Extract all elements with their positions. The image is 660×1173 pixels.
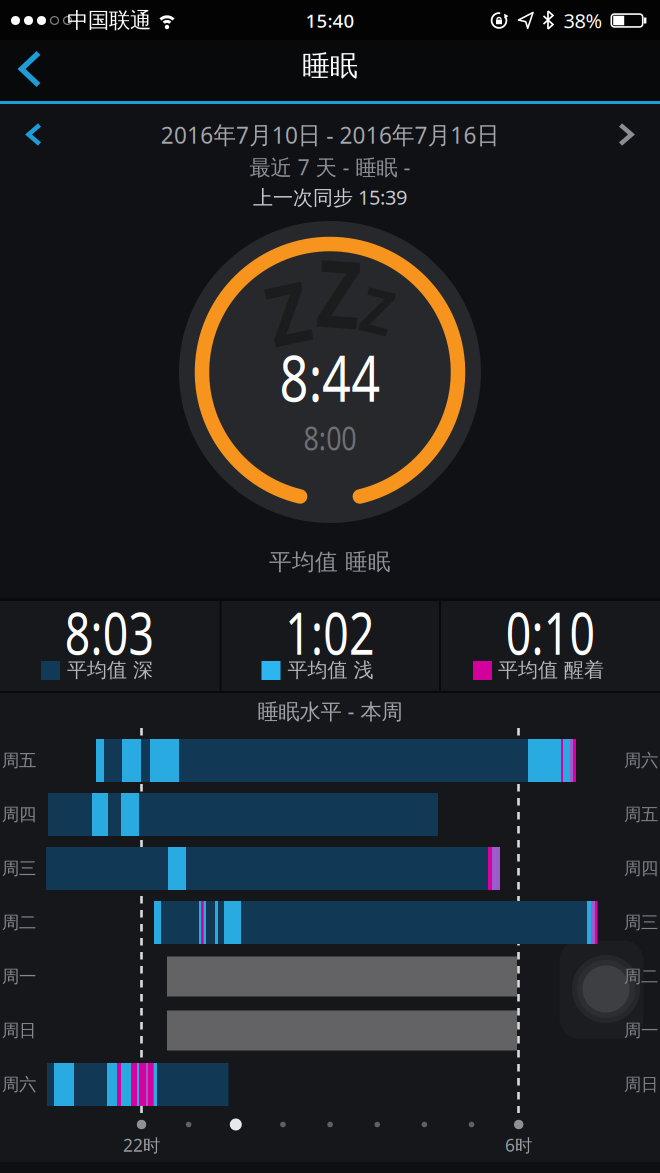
staticText: 周三 <box>624 912 658 933</box>
staticText: 平均值 醒着 <box>498 658 604 682</box>
staticText: 周二 <box>624 966 658 987</box>
staticText: 上一次同步 15:39 <box>253 184 407 210</box>
staticText: 周三 <box>2 858 36 879</box>
staticText: Z <box>264 257 312 367</box>
staticText: 15:40 <box>305 8 354 33</box>
staticText: 中国联通 <box>67 7 151 34</box>
staticText: Z <box>360 269 396 351</box>
staticText: 周日 <box>624 1074 658 1095</box>
staticText: 周五 <box>2 750 36 771</box>
staticText: 睡眠水平 - 本周 <box>257 697 402 725</box>
staticText: 2016年7月10日 - 2016年7月16日 <box>150 119 510 150</box>
staticText: 周六 <box>2 1074 36 1095</box>
button[interactable]: 上一周 <box>16 113 51 156</box>
staticText: 周六 <box>624 750 658 771</box>
staticText: 8:03 <box>50 593 168 671</box>
staticText: 最近 7 天 - 睡眠 - <box>249 153 410 181</box>
staticText: 平均值 睡眠 <box>269 548 391 576</box>
button[interactable]: 下一周 <box>608 113 643 156</box>
staticText: 1:02 <box>271 593 389 671</box>
button[interactable]: 返回 <box>7 45 52 93</box>
staticText: 周二 <box>2 912 36 933</box>
staticText: 8:00 <box>298 417 361 459</box>
staticText: 周五 <box>624 804 658 825</box>
button[interactable]: 同步 <box>559 940 643 1038</box>
staticText: 平均值 深 <box>67 658 153 682</box>
staticText: 周一 <box>2 966 36 987</box>
staticText: 0:10 <box>491 593 609 671</box>
staticText: 22时 <box>123 1133 160 1156</box>
staticText: 6时 <box>505 1133 532 1156</box>
staticText: Z <box>312 230 366 354</box>
staticText: 平均值 浅 <box>287 658 373 682</box>
staticText: 睡眠 <box>302 49 358 83</box>
staticText: 周四 <box>2 804 36 825</box>
staticText: 周日 <box>2 1020 36 1041</box>
staticText: 周四 <box>624 858 658 879</box>
staticText: 38% <box>563 7 602 34</box>
staticText: 周一 <box>624 1020 658 1041</box>
staticText: 8:44 <box>266 334 394 419</box>
